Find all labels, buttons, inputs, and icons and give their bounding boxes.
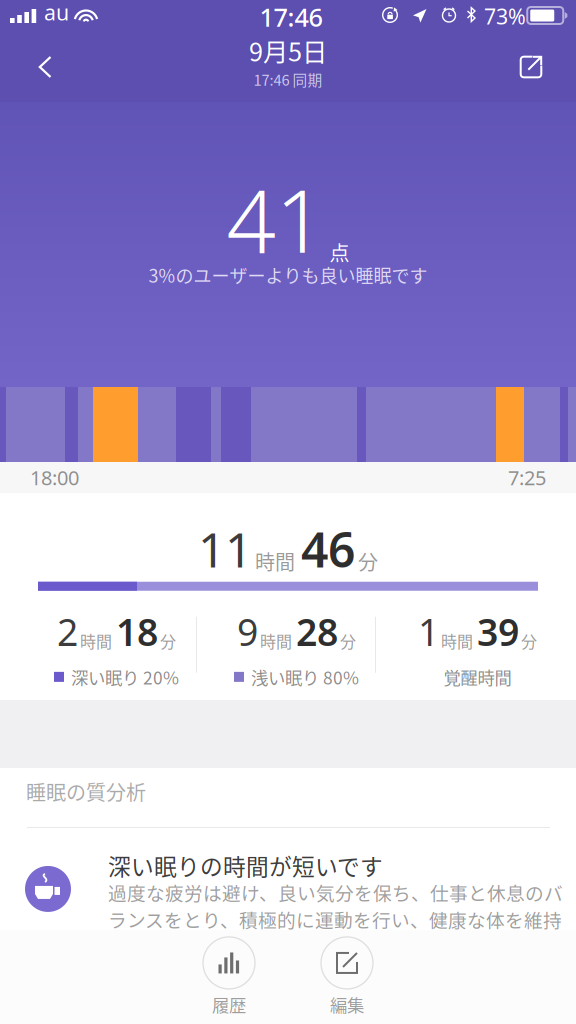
staticText: 覚醒時間 — [443, 664, 511, 689]
button[interactable]: 履歴 — [170, 935, 288, 1019]
staticText: 時間 — [255, 547, 295, 576]
staticText: 18:00 — [30, 464, 79, 491]
staticText: 17:46 — [259, 0, 322, 34]
staticText: 編集 — [330, 992, 364, 1017]
staticText: 点 — [329, 238, 349, 267]
staticText: 分 — [340, 629, 356, 652]
staticText: 履歴 — [212, 992, 246, 1017]
staticText: 分 — [358, 547, 378, 576]
staticText: 時間 — [80, 629, 112, 652]
staticText: au — [44, 0, 69, 26]
staticText: 28 — [296, 607, 338, 656]
button[interactable]: 共有 — [500, 36, 562, 98]
staticText: 浅い眠り 80% — [251, 664, 359, 689]
staticText: 7:25 — [508, 464, 546, 491]
staticText: 睡眠の質分析 — [26, 777, 146, 806]
staticText: 分 — [160, 629, 176, 652]
staticText: 1 — [418, 607, 439, 656]
staticText: 73% — [484, 2, 526, 30]
staticText: 3%のユーザーよりも良い睡眠です — [148, 262, 427, 288]
staticText: 過度な疲労は避け、良い気分を保ち、仕事と休息のバランスをとり、積極的に運動を行い… — [108, 879, 563, 960]
staticText: 分 — [521, 629, 537, 652]
staticText: 9月5日 — [249, 32, 327, 69]
staticText: 18 — [116, 607, 158, 656]
button[interactable]: 編集 — [288, 935, 406, 1019]
staticText: 17:46 同期 — [253, 69, 322, 90]
staticText: 時間 — [260, 629, 292, 652]
staticText: 深い眠りの時間が短いです — [108, 849, 383, 882]
staticText: 11 — [198, 517, 252, 581]
staticText: 9 — [237, 607, 258, 656]
staticText: 時間 — [441, 629, 473, 652]
staticText: 深い眠り 20% — [71, 664, 179, 689]
staticText: 2 — [57, 607, 78, 656]
staticText: 46 — [301, 517, 355, 581]
staticText: 39 — [477, 607, 519, 656]
button[interactable]: 戻る — [14, 36, 76, 98]
staticText: 41 — [226, 161, 324, 277]
